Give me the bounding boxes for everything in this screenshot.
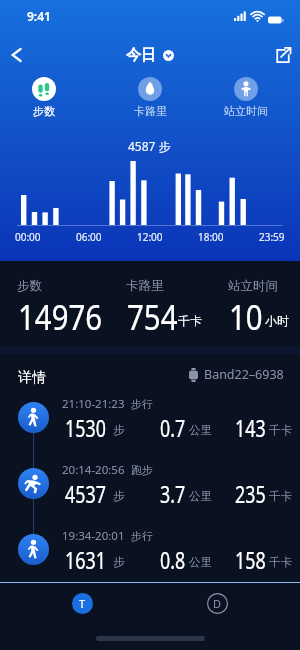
button[interactable]: Band22–6938 <box>189 366 284 383</box>
staticText: 235 <box>235 478 266 510</box>
button[interactable]: 21:10-21:23 <box>0 384 300 450</box>
staticText: 跑步 <box>131 463 153 477</box>
staticText: 公里 <box>189 423 212 437</box>
staticText: 千卡 <box>269 555 292 569</box>
staticText: 公里 <box>189 555 212 569</box>
staticText: 4537 <box>65 478 106 510</box>
staticText: 158 <box>235 544 266 576</box>
staticText: 步行 <box>131 397 153 411</box>
staticText: 4587 步 <box>128 138 171 154</box>
button[interactable]: 站立时间 <box>212 72 280 122</box>
staticText: 卡路里 <box>134 104 167 118</box>
staticText: 0.7 <box>160 412 186 444</box>
staticText: 1530 <box>65 412 106 444</box>
staticText: 步 <box>113 423 125 437</box>
staticText: 步数 <box>17 278 42 294</box>
button[interactable]: 今日 <box>126 46 174 65</box>
staticText: 千卡 <box>178 313 202 328</box>
staticText: 步 <box>113 555 125 569</box>
staticText: 3.7 <box>160 478 186 510</box>
staticText: 卡路里 <box>126 278 164 294</box>
staticText: 站立时间 <box>224 104 268 118</box>
staticText: 754 <box>127 293 178 341</box>
button[interactable]: Back <box>0 38 34 72</box>
staticText: 站立时间 <box>228 278 278 294</box>
staticText: 千卡 <box>269 423 292 437</box>
staticText: 14976 <box>18 293 103 341</box>
button[interactable]: 步数 <box>10 72 78 122</box>
staticText: 1631 <box>65 544 106 576</box>
staticText: 19:34-20:01 <box>62 528 125 544</box>
button[interactable]: 19:34-20:01 <box>0 516 300 574</box>
staticText: 18:00 <box>198 230 224 244</box>
staticText: 小时 <box>265 313 289 328</box>
staticText: 06:00 <box>76 230 102 244</box>
staticText: 步行 <box>131 529 153 543</box>
staticText: 步数 <box>33 104 55 118</box>
staticText: T <box>79 596 86 611</box>
button[interactable]: Share <box>266 38 300 72</box>
staticText: 20:14-20:56 <box>62 462 125 478</box>
staticText: 公里 <box>189 489 212 503</box>
staticText: 0.8 <box>160 544 186 576</box>
staticText: Band22–6938 <box>204 366 284 383</box>
staticText: 9:41 <box>27 8 51 24</box>
button[interactable]: Data <box>207 593 228 614</box>
staticText: 00:00 <box>15 230 41 244</box>
staticText: D <box>213 596 222 611</box>
staticText: 千卡 <box>269 489 292 503</box>
button[interactable]: 20:14-20:56 <box>0 450 300 516</box>
button[interactable]: 卡路里 <box>116 72 184 122</box>
staticText: 步 <box>113 489 125 503</box>
staticText: 23:59 <box>259 230 285 244</box>
staticText: 10 <box>229 293 263 341</box>
staticText: 12:00 <box>137 230 163 244</box>
staticText: 详情 <box>18 369 46 387</box>
staticText: 今日 <box>126 46 156 65</box>
button[interactable]: Today <box>72 593 93 614</box>
staticText: 143 <box>235 412 266 444</box>
staticText: 21:10-21:23 <box>62 396 125 412</box>
